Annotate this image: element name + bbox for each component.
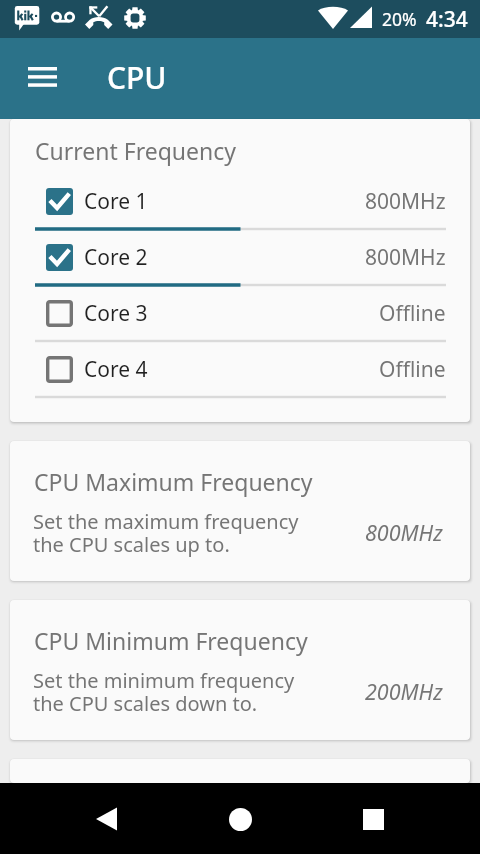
staticText: 4:34 bbox=[426, 5, 468, 34]
staticText: Core 4 bbox=[84, 355, 379, 384]
button[interactable]: Core 4 bbox=[10, 344, 470, 400]
staticText: 20% bbox=[382, 7, 417, 31]
button[interactable]: Back bbox=[82, 795, 130, 843]
staticText: Offline bbox=[379, 355, 446, 384]
staticText: Set the maximum frequency the CPU scales… bbox=[33, 508, 299, 558]
staticText: 800MHz bbox=[365, 187, 446, 216]
button[interactable]: Home bbox=[216, 795, 264, 843]
button[interactable]: Core 3 bbox=[10, 288, 470, 344]
button[interactable]: Core 2 bbox=[10, 232, 470, 288]
button[interactable]: CPU Maximum Frequency bbox=[10, 441, 470, 581]
button[interactable]: CPU Minimum Frequency bbox=[10, 600, 470, 740]
button[interactable]: Open navigation menu bbox=[14, 49, 70, 105]
staticText: 200MHz bbox=[365, 677, 443, 706]
staticText: 800MHz bbox=[365, 243, 446, 272]
button[interactable]: Core 1 bbox=[10, 176, 470, 232]
staticText: CPU bbox=[107, 57, 167, 98]
staticText: 800MHz bbox=[365, 518, 443, 547]
staticText: Offline bbox=[379, 299, 446, 328]
staticText: Core 3 bbox=[84, 299, 379, 328]
button[interactable]: Recent apps bbox=[349, 795, 397, 843]
staticText: CPU Minimum Frequency bbox=[34, 625, 308, 656]
staticText: Core 2 bbox=[84, 243, 365, 272]
staticText: Core 1 bbox=[84, 187, 365, 216]
staticText: Set the minimum frequency the CPU scales… bbox=[33, 667, 295, 717]
staticText: Current Frequency bbox=[35, 135, 237, 166]
staticText: CPU Maximum Frequency bbox=[34, 466, 313, 497]
